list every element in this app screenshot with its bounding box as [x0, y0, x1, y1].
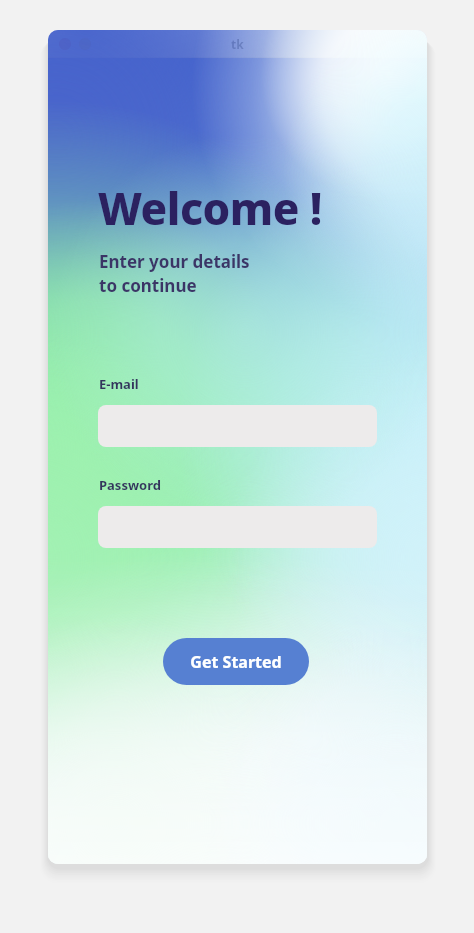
button[interactable]: Password input: [98, 506, 377, 548]
button[interactable]: E-mail input: [98, 405, 377, 447]
staticText: E-mail: [99, 375, 139, 393]
staticText: Welcome !: [98, 178, 322, 238]
staticText: tk: [231, 36, 244, 52]
staticText: Get Started: [190, 651, 282, 673]
staticText: Enter your details to continue: [99, 250, 250, 297]
button[interactable]: Get Started: [163, 638, 309, 685]
staticText: Password: [99, 476, 161, 494]
